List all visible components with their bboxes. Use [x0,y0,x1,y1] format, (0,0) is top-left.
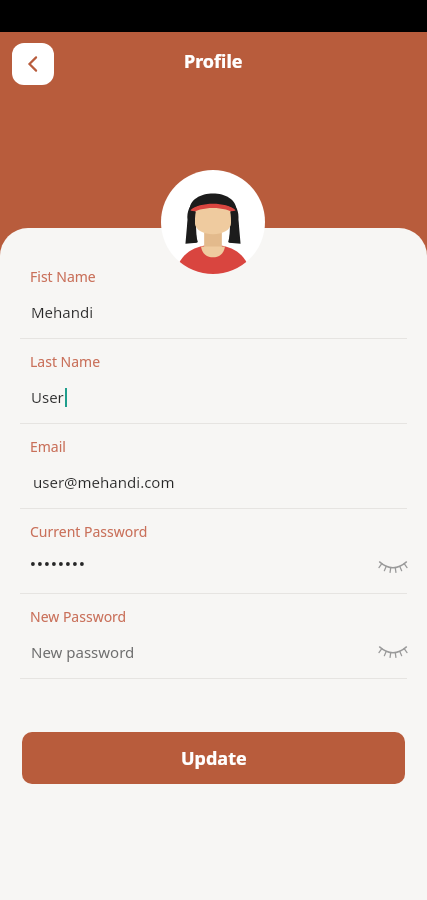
staticText: user@mehandi.com [33,472,175,492]
staticText: Last Name [30,352,101,371]
staticText: Current Password [30,522,148,541]
button[interactable]: Show password [377,636,409,668]
staticText: Mehandi [31,302,94,322]
staticText: New password [31,642,135,662]
staticText: Email [30,437,66,456]
staticText: Profile [184,49,243,74]
staticText: Update [181,746,247,771]
button[interactable]: Fist Name [0,258,427,339]
staticText: Fist Name [30,267,96,286]
button[interactable]: Last Name [0,343,427,424]
button[interactable]: Show password [377,551,409,583]
button[interactable]: Update [22,732,405,784]
button[interactable]: Email [0,428,427,509]
button[interactable]: Back [12,43,54,85]
staticText: User [31,387,64,407]
button[interactable]: Current Password [0,513,427,594]
button[interactable]: New Password [0,598,427,679]
staticText: New Password [30,607,127,626]
